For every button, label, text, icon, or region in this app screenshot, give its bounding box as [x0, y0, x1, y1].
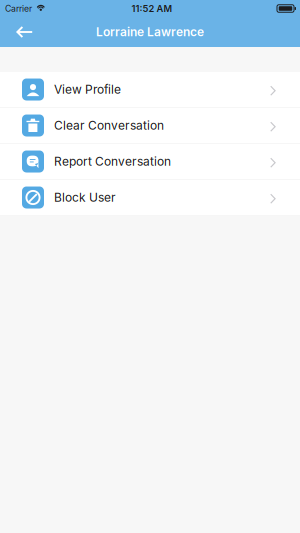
- button[interactable]: View Profile: [0, 72, 300, 108]
- staticText: Clear Conversation: [54, 118, 164, 133]
- staticText: 11:52 AM: [131, 3, 172, 14]
- button[interactable]: Report Conversation: [0, 144, 300, 180]
- staticText: Block User: [54, 190, 116, 205]
- staticText: Lorraine Lawrence: [96, 25, 204, 39]
- staticText: Report Conversation: [54, 154, 171, 169]
- button[interactable]: Back: [0, 17, 47, 47]
- button[interactable]: Block User: [0, 180, 300, 216]
- staticText: View Profile: [54, 82, 121, 97]
- button[interactable]: Clear Conversation: [0, 108, 300, 144]
- staticText: Carrier: [5, 3, 32, 14]
